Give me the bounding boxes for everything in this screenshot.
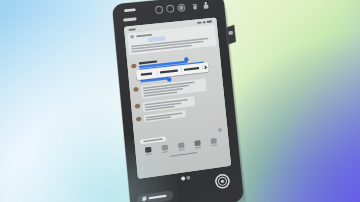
other: Screenshot markup preview [0, 0, 360, 202]
